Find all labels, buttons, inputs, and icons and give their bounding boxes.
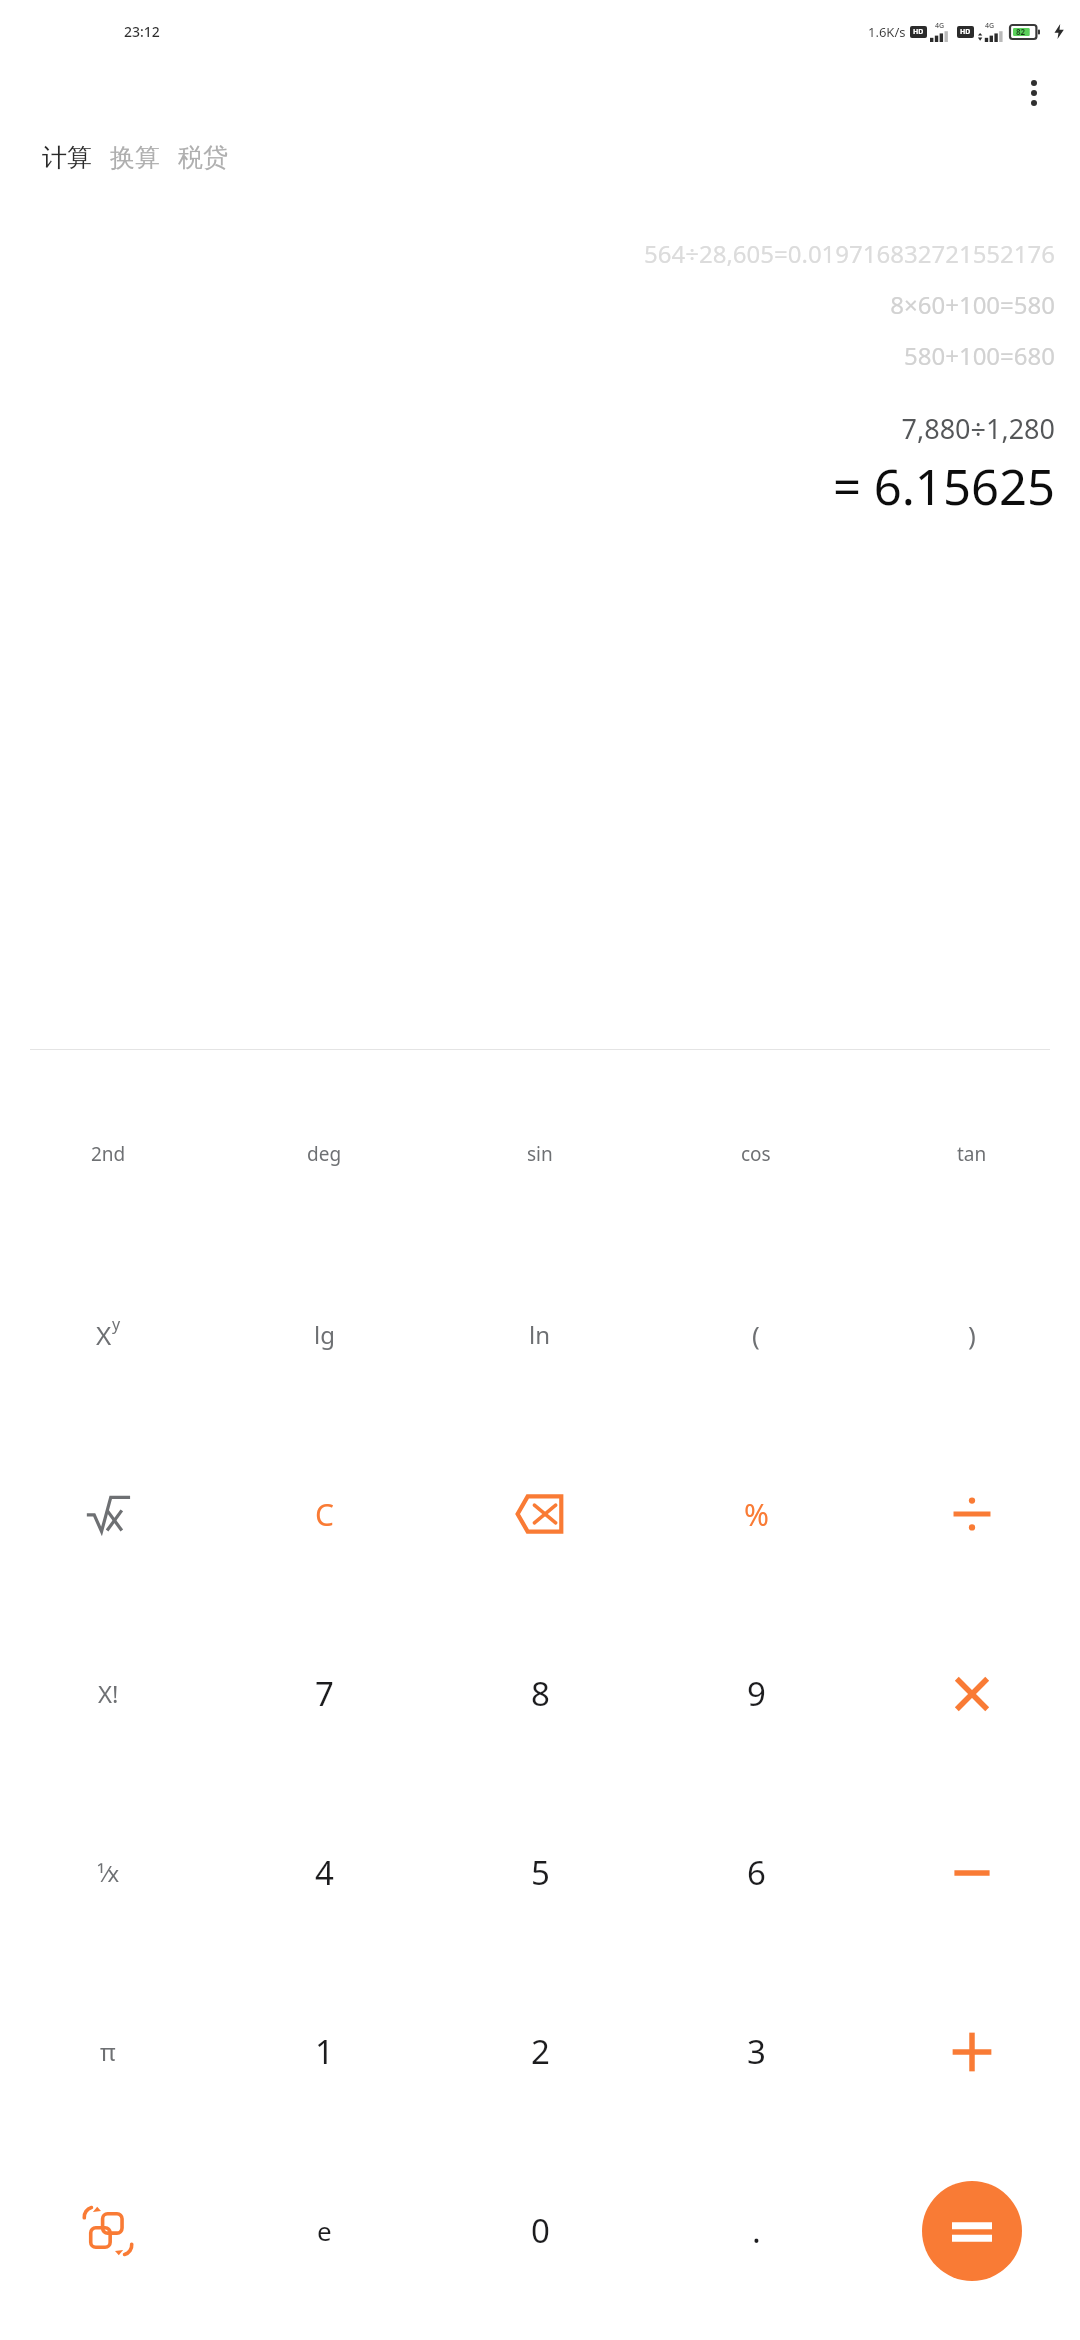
button[interactable]: 5 (432, 1783, 648, 1962)
button[interactable]: Multiply (864, 1604, 1080, 1783)
button[interactable]: tan (864, 1064, 1080, 1244)
button[interactable]: . (648, 2141, 864, 2320)
button[interactable]: x to the power of y (0, 1244, 216, 1424)
button[interactable]: Minus (864, 1783, 1080, 1962)
staticText: 8 (531, 1671, 550, 1716)
button[interactable]: C (216, 1424, 432, 1604)
staticText: tan (957, 1141, 987, 1167)
staticText: 4 (315, 1850, 334, 1895)
staticText: 6 (747, 1850, 766, 1895)
staticText: 税贷 (178, 142, 228, 173)
staticText: 计算 (42, 142, 92, 173)
staticText: 7,880÷1,280 (901, 410, 1055, 447)
button[interactable]: sin (432, 1064, 648, 1244)
staticText: 1.6K/s (868, 23, 906, 41)
staticText: deg (307, 1141, 342, 1167)
button[interactable]: Square root (0, 1424, 216, 1604)
button[interactable]: 税贷 (176, 138, 230, 177)
button[interactable]: 2 (432, 1962, 648, 2141)
staticText: % (744, 1494, 769, 1535)
staticText: ) (968, 1317, 976, 1352)
staticText: cos (741, 1141, 771, 1167)
staticText: lg (314, 1318, 335, 1351)
button[interactable]: Equals (864, 2141, 1080, 2320)
staticText: 3 (747, 2029, 766, 2074)
button[interactable]: Divide (864, 1424, 1080, 1604)
button[interactable]: deg (216, 1064, 432, 1244)
staticText: 换算 (110, 142, 160, 173)
staticText: y (112, 1313, 121, 1335)
button[interactable]: 7 (216, 1604, 432, 1783)
staticText: 9 (747, 1671, 766, 1716)
staticText: = 6.15625 (832, 453, 1055, 520)
button[interactable]: 换算 (108, 138, 162, 177)
staticText: 2nd (91, 1141, 126, 1167)
staticText: 580+100=680 (903, 339, 1055, 372)
staticText: 8×60+100=580 (890, 288, 1055, 321)
staticText: HD (960, 27, 971, 37)
staticText: e (317, 2213, 332, 2248)
button[interactable]: e (216, 2141, 432, 2320)
staticText: ¹⁄x (97, 1858, 120, 1888)
button[interactable]: 3 (648, 1962, 864, 2141)
staticText: 4G (935, 21, 945, 31)
staticText: 82 (1016, 26, 1026, 37)
staticText: C (315, 1494, 334, 1535)
button[interactable]: ( (648, 1244, 864, 1424)
staticText: 0 (531, 2208, 550, 2253)
staticText: 5 (531, 1850, 550, 1895)
button[interactable]: 计算 (40, 138, 94, 177)
button[interactable]: X! (0, 1604, 216, 1783)
button[interactable]: ¹⁄x (0, 1783, 216, 1962)
staticText: π (100, 2035, 116, 2068)
button[interactable]: 4 (216, 1783, 432, 1962)
button[interactable]: Convert (0, 2141, 216, 2320)
button[interactable]: 9 (648, 1604, 864, 1783)
button[interactable]: 0 (432, 2141, 648, 2320)
staticText: HD (913, 27, 924, 37)
button[interactable]: % (648, 1424, 864, 1604)
button[interactable]: cos (648, 1064, 864, 1244)
button[interactable]: ) (864, 1244, 1080, 1424)
button[interactable]: 8 (432, 1604, 648, 1783)
button[interactable]: Backspace (432, 1424, 648, 1604)
button[interactable]: More options (1010, 69, 1058, 117)
button[interactable]: 1 (216, 1962, 432, 2141)
button[interactable]: 6 (648, 1783, 864, 1962)
staticText: 564÷28,605=0.019716832721552176 (644, 237, 1055, 270)
button[interactable]: Plus (864, 1962, 1080, 2141)
button[interactable]: π (0, 1962, 216, 2141)
staticText: sin (527, 1141, 553, 1167)
staticText: . (752, 2208, 761, 2253)
button[interactable]: lg (216, 1244, 432, 1424)
staticText: ln (529, 1318, 551, 1351)
staticText: 23:12 (124, 22, 160, 41)
staticText: 2 (531, 2029, 550, 2074)
staticText: X! (98, 1677, 119, 1710)
button[interactable]: 2nd (0, 1064, 216, 1244)
staticText: X (96, 1317, 112, 1352)
staticText: 4G (985, 21, 995, 31)
button[interactable]: ln (432, 1244, 648, 1424)
staticText: ( (752, 1317, 760, 1352)
staticText: 7 (315, 1671, 334, 1716)
staticText: 1 (315, 2029, 334, 2074)
